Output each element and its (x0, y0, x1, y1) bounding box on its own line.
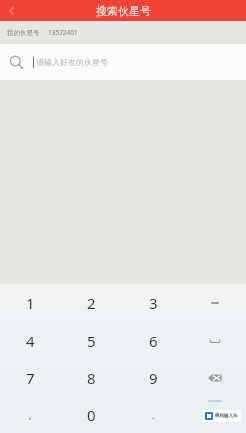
staticText: 2 (87, 293, 96, 313)
staticText: 搜索伙星号 (96, 4, 151, 18)
staticText: 8 (87, 368, 96, 388)
staticText: 4 (26, 331, 35, 351)
button[interactable]: 请输入好友的伙星号 (0, 44, 246, 80)
button[interactable]: 2 (61, 284, 122, 322)
button[interactable]: Back (0, 0, 24, 21)
button[interactable]: Minus (184, 284, 246, 322)
staticText: , (29, 409, 32, 421)
button[interactable]: 8 (61, 359, 122, 396)
staticText: 7 (26, 368, 35, 388)
staticText: 搜狗输入法 (215, 413, 238, 419)
button[interactable]: 0 (61, 396, 122, 433)
button[interactable]: Enter (184, 396, 246, 433)
button[interactable]: 4 (0, 322, 61, 359)
staticText: 0 (87, 405, 96, 425)
button[interactable]: 7 (0, 359, 61, 396)
button[interactable]: 6 (122, 322, 184, 359)
button[interactable]: Space (184, 322, 246, 359)
button[interactable]: 5 (61, 322, 122, 359)
staticText: 3 (149, 293, 158, 313)
staticText: . (152, 409, 155, 421)
staticText: 1 (26, 293, 35, 313)
staticText: 13572401 (48, 28, 78, 37)
button[interactable]: 3 (122, 284, 184, 322)
staticText: 我的伙星号 (7, 29, 40, 37)
button[interactable]: 1 (0, 284, 61, 322)
staticText: 9 (149, 368, 158, 388)
staticText: 5 (87, 331, 96, 351)
button[interactable]: 9 (122, 359, 184, 396)
staticText: 6 (149, 331, 158, 351)
button[interactable]: Delete (184, 359, 246, 396)
staticText: 请输入好友的伙星号 (36, 57, 108, 67)
